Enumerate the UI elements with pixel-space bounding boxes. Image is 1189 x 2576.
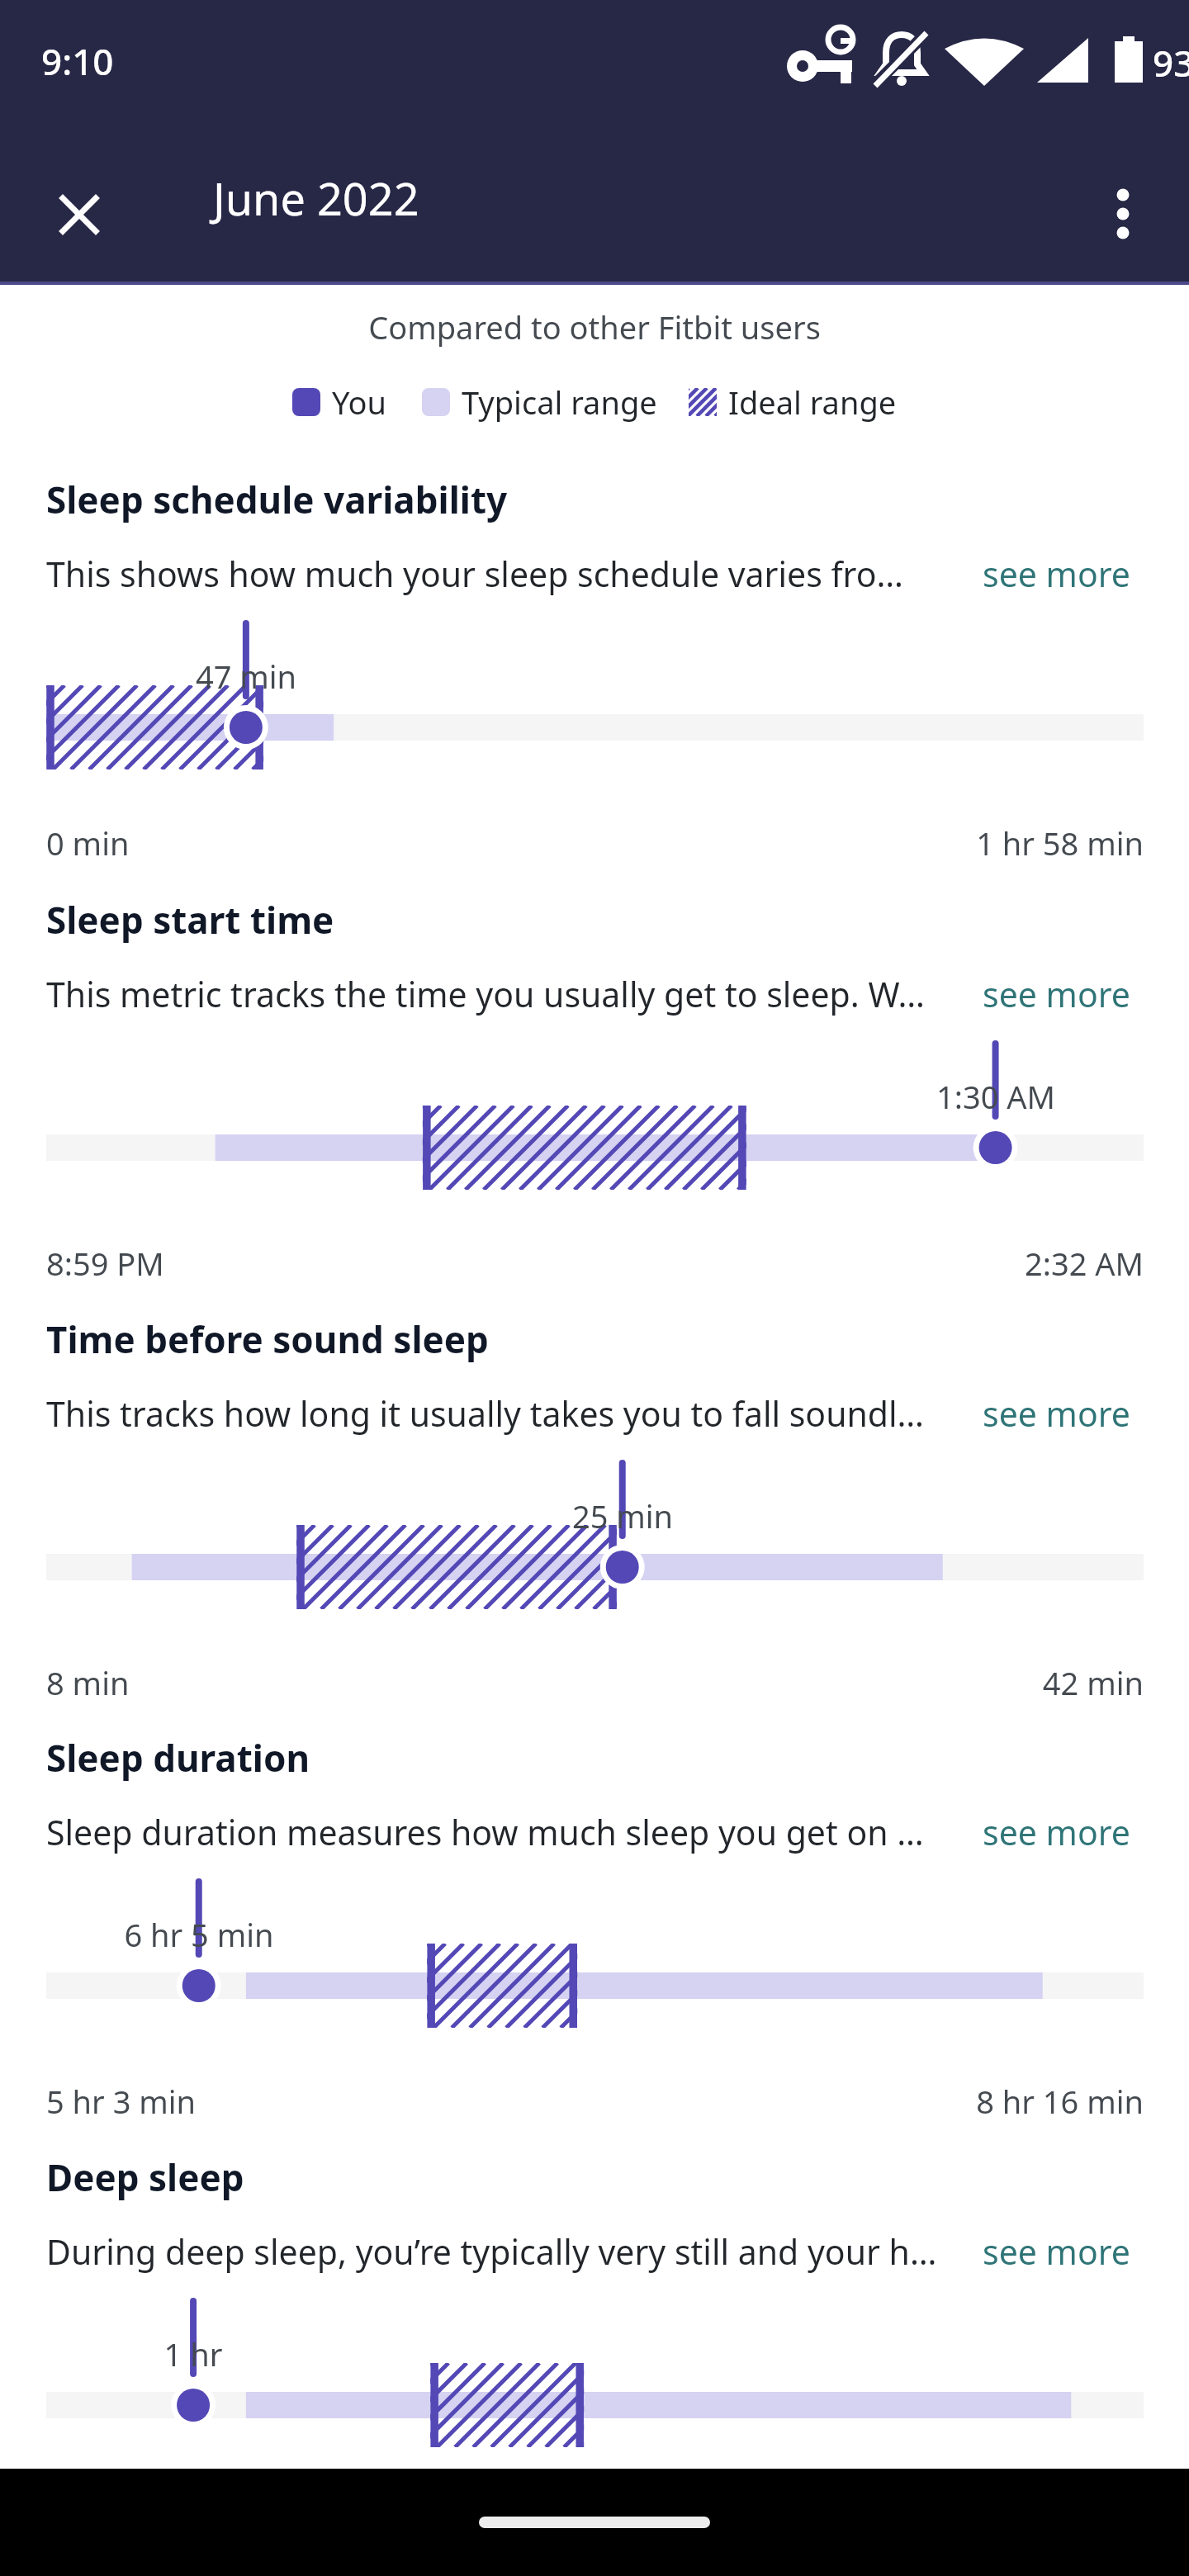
staticText: Sleep schedule variability [46, 475, 508, 524]
staticText: 6 hr 5 min [108, 1913, 290, 1956]
staticText: 1 hr [102, 2332, 284, 2375]
staticText: 2:32 AM [813, 1242, 1144, 1285]
staticText: 1:30 AM [905, 1075, 1087, 1118]
staticText: Deep sleep [46, 2152, 244, 2202]
button[interactable]: Close [40, 175, 119, 254]
staticText: You [332, 381, 387, 424]
staticText: see more [983, 971, 1130, 1017]
staticText: June 2022 [213, 168, 419, 229]
staticText: This tracks how long it usually takes yo… [46, 1390, 925, 1437]
staticText: Typical range [462, 381, 657, 424]
staticText: 8:59 PM [46, 1242, 164, 1285]
staticText: 0 min [46, 822, 130, 864]
staticText: 25 min [532, 1494, 713, 1537]
button[interactable]: see more [983, 971, 1130, 1017]
staticText: This shows how much your sleep schedule … [46, 551, 903, 597]
staticText: Sleep start time [46, 895, 334, 945]
staticText: 5 hr 3 min [46, 2080, 197, 2123]
staticText: 47 min [155, 655, 337, 698]
staticText: This metric tracks the time you usually … [46, 971, 925, 1017]
staticText: 8 min [46, 1661, 130, 1704]
button[interactable]: More options [1083, 174, 1163, 253]
staticText: Ideal range [728, 381, 897, 424]
staticText: Sleep duration [46, 1733, 310, 1783]
staticText: Compared to other Fitbit users [368, 305, 821, 348]
staticText: 93% [1153, 38, 1189, 88]
staticText: see more [983, 2228, 1130, 2275]
staticText: see more [983, 1809, 1130, 1855]
button[interactable]: see more [983, 1809, 1130, 1855]
button[interactable]: see more [983, 1390, 1130, 1437]
staticText: see more [983, 1390, 1130, 1437]
staticText: 8 hr 16 min [813, 2080, 1144, 2123]
staticText: 1 hr 58 min [813, 822, 1144, 864]
staticText: During deep sleep, you’re typically very… [46, 2228, 937, 2275]
button[interactable]: see more [983, 551, 1130, 597]
staticText: 42 min [813, 1661, 1144, 1704]
staticText: Sleep duration measures how much sleep y… [46, 1809, 924, 1855]
staticText: 9:10 [41, 36, 114, 86]
staticText: Time before sound sleep [46, 1314, 489, 1364]
staticText: see more [983, 551, 1130, 597]
button[interactable]: see more [983, 2228, 1130, 2275]
